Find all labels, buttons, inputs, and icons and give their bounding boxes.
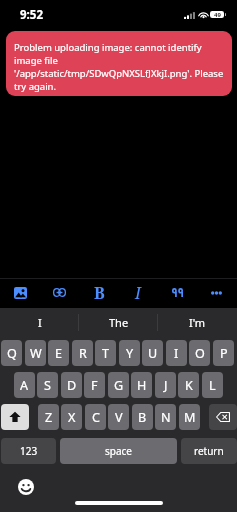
button[interactable]: space [60, 438, 177, 464]
button[interactable]: Backspace [209, 404, 237, 430]
button[interactable]: B [132, 404, 153, 430]
button[interactable]: R [72, 340, 93, 366]
button[interactable]: S [37, 372, 58, 398]
staticText: F [91, 377, 98, 394]
staticText: Y [126, 345, 134, 362]
staticText: S [44, 377, 51, 394]
staticText: space [105, 444, 132, 458]
button[interactable]: F [84, 372, 105, 398]
staticText: L [209, 377, 216, 394]
staticText: E [55, 345, 63, 362]
button[interactable]: Shift [1, 404, 29, 430]
button[interactable]: Emoji keyboard [18, 479, 34, 495]
staticText: W [30, 345, 42, 362]
button[interactable]: Y [119, 340, 140, 366]
staticText: N [161, 409, 171, 426]
staticText: I [174, 345, 179, 362]
staticText: 9:52 [20, 7, 43, 23]
button[interactable]: G [108, 372, 129, 398]
staticText: U [148, 345, 158, 362]
button[interactable]: C [85, 404, 106, 430]
staticText: C [92, 409, 100, 426]
staticText: I [135, 282, 141, 304]
staticText: O [195, 345, 205, 362]
button[interactable]: Italic [121, 277, 155, 308]
button[interactable]: More options [199, 277, 233, 308]
button[interactable]: K [178, 372, 199, 398]
button[interactable]: N [155, 404, 176, 430]
button[interactable]: J [155, 372, 176, 398]
staticText: Q [7, 345, 17, 362]
button[interactable]: U [142, 340, 163, 366]
staticText: return [194, 444, 224, 458]
staticText: G [114, 377, 124, 394]
staticText: R [79, 345, 87, 362]
staticText: M [184, 409, 196, 426]
staticText: B [138, 409, 147, 426]
staticText: I'm [189, 315, 206, 330]
button[interactable]: E [48, 340, 69, 366]
staticText: T [102, 345, 110, 362]
button[interactable]: I [0, 308, 79, 336]
button[interactable]: I [166, 340, 187, 366]
button[interactable]: Insert link [42, 277, 76, 308]
button[interactable]: I'm [158, 308, 237, 336]
button[interactable]: V [108, 404, 129, 430]
staticText: J [164, 377, 168, 394]
button[interactable]: M [179, 404, 200, 430]
button[interactable]: Bold [82, 277, 116, 308]
button[interactable]: Problem uploading image: cannot identify… [6, 31, 232, 96]
staticText: The [109, 315, 129, 330]
button[interactable]: X [61, 404, 82, 430]
button[interactable]: Insert image [3, 277, 37, 308]
staticText: D [67, 377, 77, 394]
button[interactable]: return [181, 438, 237, 464]
staticText: P [220, 345, 228, 362]
staticText: 123 [20, 444, 38, 458]
button[interactable]: Z [38, 404, 59, 430]
staticText: 49 [214, 11, 221, 18]
button[interactable]: P [213, 340, 234, 366]
staticText: B [94, 282, 105, 304]
staticText: A [20, 377, 29, 394]
button[interactable]: A [14, 372, 35, 398]
button[interactable]: 123 [1, 438, 56, 464]
staticText: X [68, 409, 76, 426]
button[interactable]: T [95, 340, 116, 366]
staticText: Problem uploading image: cannot identify… [14, 41, 226, 93]
button[interactable]: O [189, 340, 210, 366]
staticText: V [115, 409, 123, 426]
button[interactable]: Quote [160, 277, 194, 308]
button[interactable]: Q [1, 340, 22, 366]
staticText: H [137, 377, 147, 394]
button[interactable]: L [202, 372, 223, 398]
staticText: K [185, 377, 193, 394]
button[interactable]: H [131, 372, 152, 398]
button[interactable]: W [25, 340, 46, 366]
button[interactable]: The [79, 308, 158, 336]
button[interactable]: D [61, 372, 82, 398]
staticText: I [38, 315, 42, 330]
staticText: Z [45, 409, 53, 426]
